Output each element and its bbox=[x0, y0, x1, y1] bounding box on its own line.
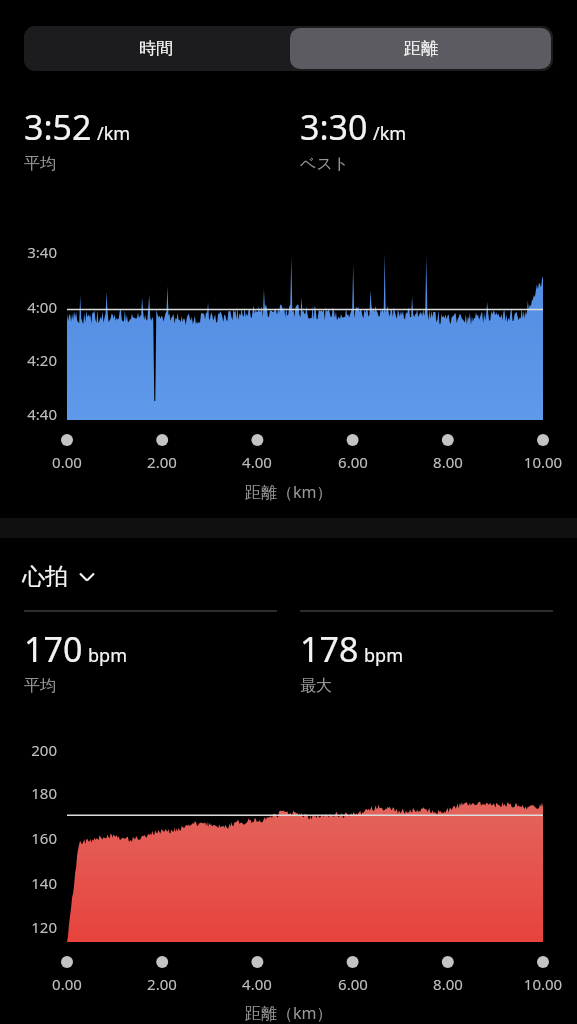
staticText: 最大 bbox=[300, 676, 332, 696]
staticText: 0.00 bbox=[27, 974, 107, 994]
staticText: /km bbox=[373, 121, 407, 146]
staticText: 6.00 bbox=[313, 452, 393, 472]
staticText: 4.00 bbox=[217, 452, 297, 472]
staticText: 2.00 bbox=[122, 974, 202, 994]
staticText: ベスト bbox=[300, 154, 350, 174]
staticText: 10.00 bbox=[503, 452, 577, 472]
staticText: 170 bbox=[24, 626, 83, 672]
staticText: 平均 bbox=[24, 154, 56, 174]
staticText: 4.00 bbox=[217, 974, 297, 994]
other: 心拍を展開 bbox=[77, 567, 97, 587]
staticText: 3:30 bbox=[300, 104, 368, 150]
staticText: bpm bbox=[88, 643, 127, 668]
staticText: 120 bbox=[0, 917, 57, 937]
button[interactable]: 心拍 bbox=[22, 562, 97, 591]
staticText: 140 bbox=[0, 873, 57, 893]
staticText: 時間 bbox=[139, 38, 173, 59]
staticText: 2.00 bbox=[122, 452, 202, 472]
staticText: 10.00 bbox=[503, 974, 577, 994]
staticText: 4:40 bbox=[0, 404, 57, 424]
button[interactable]: 時間 bbox=[24, 26, 288, 71]
staticText: 0.00 bbox=[27, 452, 107, 472]
staticText: 距離 bbox=[404, 38, 438, 59]
staticText: 3:40 bbox=[0, 242, 57, 262]
staticText: 180 bbox=[0, 783, 57, 803]
staticText: 心拍 bbox=[22, 562, 68, 591]
staticText: 4:20 bbox=[0, 350, 57, 370]
staticText: 160 bbox=[0, 828, 57, 848]
staticText: 6.00 bbox=[313, 974, 393, 994]
staticText: /km bbox=[97, 121, 131, 146]
staticText: 3:52 bbox=[24, 104, 92, 150]
staticText: 8.00 bbox=[408, 974, 488, 994]
staticText: 距離（km） bbox=[245, 481, 333, 503]
staticText: 4:00 bbox=[0, 297, 57, 317]
staticText: 平均 bbox=[24, 676, 56, 696]
staticText: 178 bbox=[300, 626, 359, 672]
staticText: 200 bbox=[0, 740, 57, 760]
staticText: 8.00 bbox=[408, 452, 488, 472]
staticText: bpm bbox=[364, 643, 403, 668]
button[interactable]: 距離 bbox=[290, 28, 551, 69]
staticText: 距離（km） bbox=[245, 1002, 333, 1024]
